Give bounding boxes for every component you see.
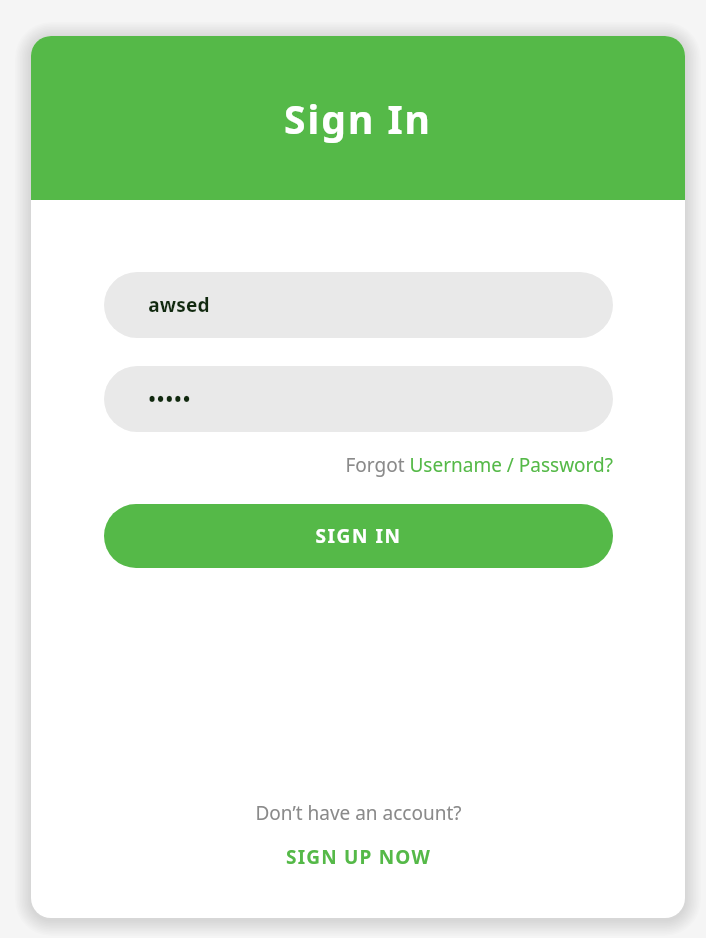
staticText: awsed (148, 292, 210, 318)
staticText: ••••• (148, 386, 192, 412)
button[interactable]: SIGN IN (104, 504, 613, 568)
staticText: SIGN IN (315, 523, 402, 549)
button[interactable]: Forgot Username / Password? (345, 452, 613, 478)
button[interactable]: ••••• (104, 366, 613, 432)
button[interactable]: SIGN UP NOW (286, 844, 431, 870)
staticText: SIGN UP NOW (286, 844, 431, 870)
staticText: Forgot Username / Password? (345, 452, 613, 478)
staticText: Sign In (284, 92, 432, 145)
staticText: Don’t have an account? (255, 800, 462, 826)
button[interactable]: awsed (104, 272, 613, 338)
